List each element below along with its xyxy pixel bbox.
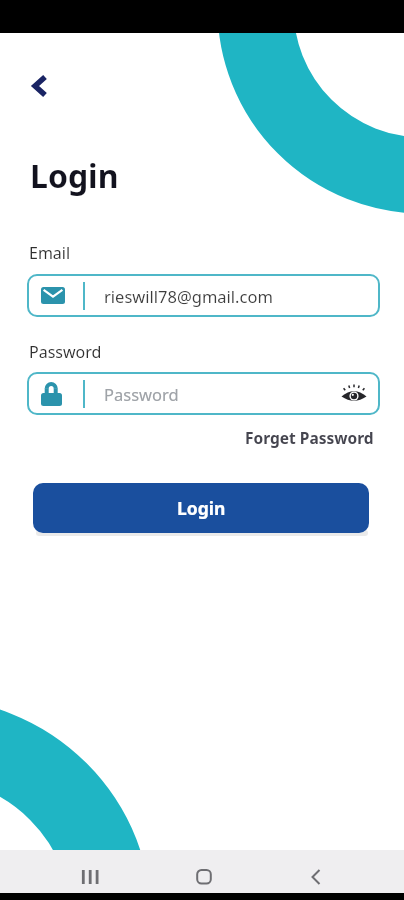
staticText: Password <box>104 383 341 405</box>
staticText: Login <box>177 496 226 520</box>
button[interactable]: Forget Password <box>245 427 374 448</box>
button[interactable]: rieswill78@gmail.com <box>27 274 380 317</box>
button[interactable]: Login <box>33 483 369 533</box>
button[interactable] <box>24 70 54 102</box>
staticText: Email <box>29 242 71 264</box>
staticText: rieswill78@gmail.com <box>104 285 273 307</box>
button[interactable] <box>341 384 367 404</box>
staticText: Password <box>29 341 102 363</box>
button[interactable]: Password <box>27 372 380 415</box>
staticText: Login <box>30 154 119 198</box>
